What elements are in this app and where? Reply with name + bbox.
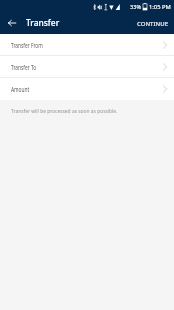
staticText: 1:05 PM [149, 3, 171, 11]
staticText: Amount [11, 85, 30, 93]
button[interactable]: CONTINUE [130, 15, 174, 33]
button[interactable]: Transfer From [0, 34, 174, 56]
staticText: Transfer To [11, 63, 37, 71]
button[interactable]: Back [0, 13, 24, 34]
staticText: Transfer [26, 17, 60, 28]
button[interactable]: Transfer To [0, 56, 174, 78]
staticText: 33% [130, 3, 142, 11]
staticText: Transfer From [11, 41, 43, 49]
staticText: CONTINUE [137, 20, 168, 28]
staticText: Transfer will be processed as soon as po… [11, 108, 118, 115]
button[interactable]: Amount [0, 78, 174, 100]
